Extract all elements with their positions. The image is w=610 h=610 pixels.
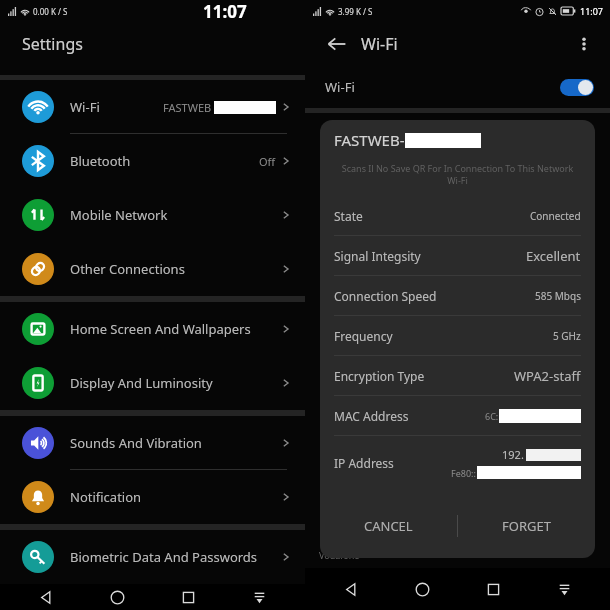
staticText: CANCEL xyxy=(364,517,413,535)
staticText: FASTWEB- xyxy=(334,130,405,150)
staticText: Wi-Fi xyxy=(361,33,398,55)
staticText: FASTWEB xyxy=(163,100,212,115)
staticText: Home Screen And Wallpapers xyxy=(70,320,251,338)
staticText: Encryption Type xyxy=(334,368,425,384)
button[interactable]: Home Screen And Wallpapers xyxy=(0,302,305,356)
staticText: Notification xyxy=(70,488,142,506)
staticText: Excellent xyxy=(526,247,581,265)
staticText: 11:07 xyxy=(203,0,247,22)
button[interactable]: Bluetooth xyxy=(0,134,305,188)
button[interactable]: Other Connections xyxy=(0,242,305,296)
staticText: Biometric Data And Passwords xyxy=(70,548,258,566)
staticText: 5 GHz xyxy=(553,329,581,343)
button[interactable]: Sounds And Vibration xyxy=(0,416,305,470)
button[interactable]: Hide navigation bar xyxy=(244,584,274,610)
staticText: Vodafone xyxy=(319,549,360,561)
staticText: Signal Integsity xyxy=(334,248,421,264)
button[interactable]: Hide navigation bar xyxy=(549,574,579,604)
staticText: 192. xyxy=(502,447,524,462)
button[interactable]: Biometric Data And Passwords xyxy=(0,530,305,584)
staticText: Scans Il No Save QR For In Connection To… xyxy=(334,162,581,186)
staticText: Connected xyxy=(530,209,581,223)
staticText: IP Address xyxy=(334,455,394,471)
staticText: Settings xyxy=(22,33,83,55)
staticText: FORGET xyxy=(502,517,551,535)
staticText: Fe80:: xyxy=(451,467,476,479)
staticText: Bluetooth xyxy=(70,152,131,170)
staticText: 6C: xyxy=(485,410,499,422)
staticText: Mobile Network xyxy=(70,206,168,224)
staticText: Wi-Fi xyxy=(70,98,100,116)
button[interactable]: Home xyxy=(407,574,437,604)
button[interactable]: Recents xyxy=(173,584,203,610)
button[interactable]: Wi-Fi xyxy=(0,80,305,134)
button[interactable]: Back xyxy=(323,30,351,58)
staticText: Wi-Fi xyxy=(325,78,355,96)
button[interactable]: Display And Luminosity xyxy=(0,356,305,410)
staticText: State xyxy=(334,208,363,224)
staticText: 585 Mbqs xyxy=(535,289,581,303)
staticText: Sounds And Vibration xyxy=(70,434,202,452)
staticText: MAC Address xyxy=(334,408,409,424)
staticText: Off xyxy=(259,154,276,169)
button[interactable]: Back xyxy=(336,574,366,604)
staticText: Other Connections xyxy=(70,260,185,278)
button[interactable]: CANCEL xyxy=(320,498,457,554)
staticText: Connection Speed xyxy=(334,288,437,304)
button[interactable]: More options xyxy=(572,32,596,56)
staticText: Display And Luminosity xyxy=(70,374,213,392)
button[interactable]: Wi-Fi xyxy=(305,66,610,108)
staticText: 0.00 K / S xyxy=(33,6,68,17)
staticText: 11:07 xyxy=(580,5,604,17)
staticText: WPA2-staff xyxy=(514,367,581,385)
button[interactable]: FORGET xyxy=(457,498,595,554)
button[interactable]: Back xyxy=(31,584,61,610)
button[interactable]: Recents xyxy=(478,574,508,604)
button[interactable]: Notification xyxy=(0,470,305,524)
button[interactable]: Home xyxy=(102,584,132,610)
button[interactable]: Mobile Network xyxy=(0,188,305,242)
staticText: Frequency xyxy=(334,328,393,344)
staticText: 3.99 K / S xyxy=(338,6,373,17)
